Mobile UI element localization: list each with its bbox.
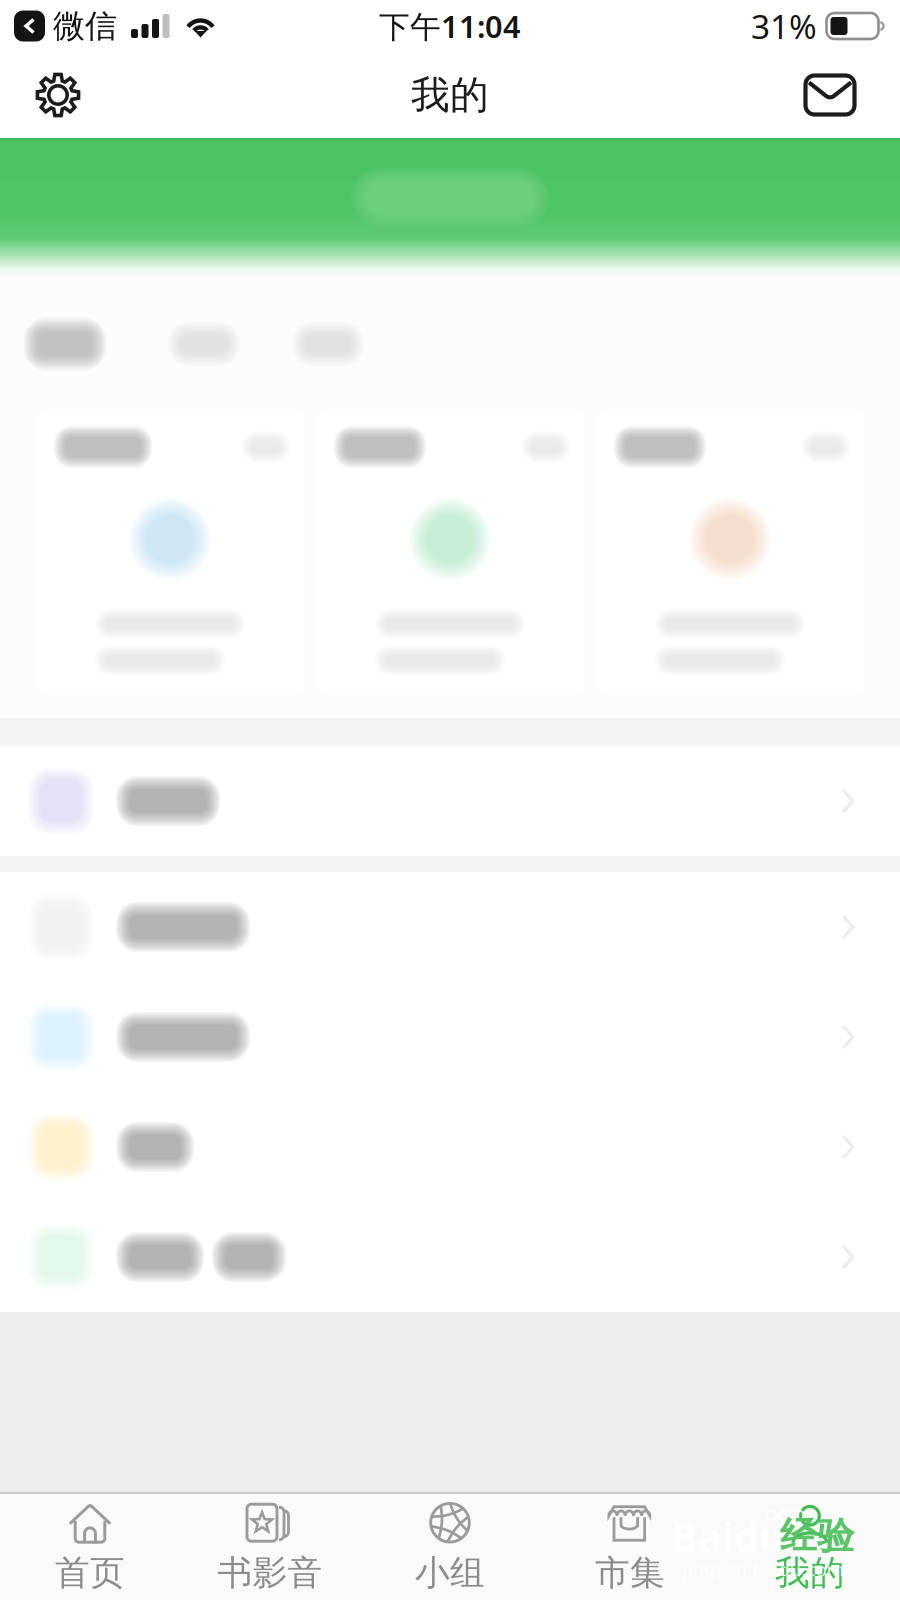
- button[interactable]: [316, 410, 584, 694]
- button[interactable]: 小组: [360, 1494, 540, 1600]
- button[interactable]: 书影音: [180, 1494, 360, 1600]
- button[interactable]: [0, 1092, 900, 1202]
- button[interactable]: [0, 872, 900, 982]
- button[interactable]: 我的: [720, 1494, 900, 1600]
- staticText: 我的: [775, 1552, 845, 1594]
- staticText: 我的: [411, 71, 489, 119]
- staticText: 市集: [595, 1552, 665, 1594]
- button[interactable]: 设置: [14, 56, 102, 134]
- button[interactable]: [0, 746, 900, 856]
- staticText: 经验: [780, 1513, 854, 1559]
- staticText: jingyan.baidu.com: [682, 1557, 843, 1581]
- button[interactable]: [0, 1202, 900, 1312]
- button[interactable]: 首页: [0, 1494, 180, 1600]
- staticText: 下午11:04: [379, 6, 521, 46]
- staticText: 31%: [751, 4, 817, 48]
- staticText: Baidu: [671, 1509, 785, 1562]
- staticText: 微信: [53, 6, 117, 46]
- button[interactable]: [596, 410, 864, 694]
- button[interactable]: 市集: [540, 1494, 720, 1600]
- button[interactable]: [0, 982, 900, 1092]
- staticText: 书影音: [217, 1552, 322, 1594]
- button[interactable]: 消息: [786, 56, 874, 134]
- staticText: 小组: [415, 1552, 485, 1594]
- staticText: 首页: [55, 1552, 125, 1594]
- button[interactable]: [36, 410, 304, 694]
